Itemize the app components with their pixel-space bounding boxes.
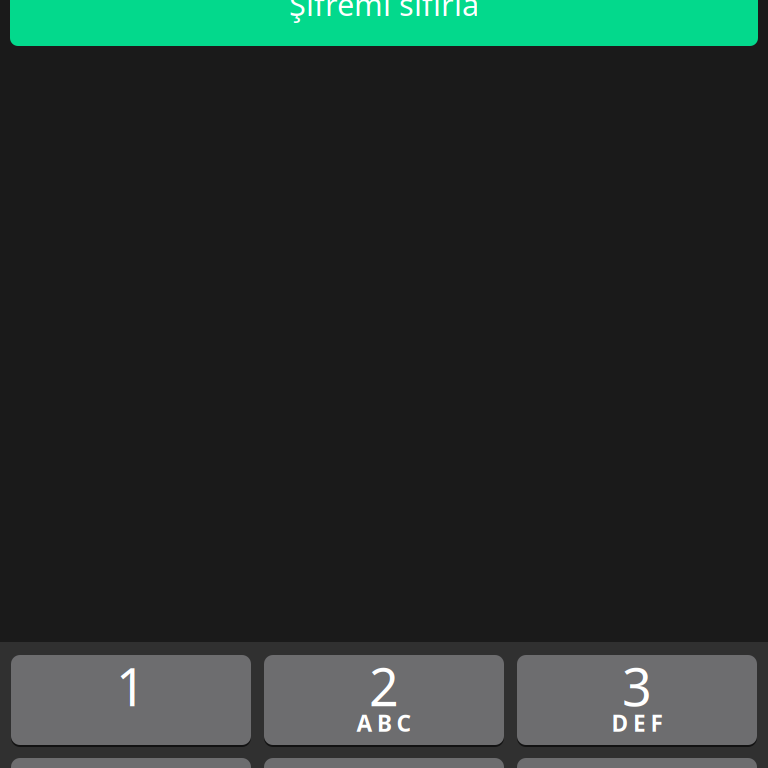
staticText: 5 — [369, 754, 399, 768]
staticText: ABC — [356, 708, 411, 738]
button[interactable]: 5 JKL — [264, 758, 504, 768]
button[interactable]: 3 DEF — [517, 655, 757, 745]
staticText: 3 — [622, 651, 652, 721]
button[interactable]: 1 — [11, 655, 251, 745]
button[interactable]: 4 GHI — [11, 758, 251, 768]
staticText: 6 — [622, 754, 652, 768]
button[interactable]: 6 MNO — [517, 758, 757, 768]
staticText: DEF — [611, 708, 662, 738]
button[interactable]: Şifremi sıfırla — [10, 0, 758, 46]
staticText: 2 — [369, 651, 399, 721]
button[interactable]: 2 ABC — [264, 655, 504, 745]
staticText: Şifremi sıfırla — [289, 0, 479, 24]
staticText: 4 — [116, 754, 146, 768]
staticText: 1 — [116, 651, 146, 721]
